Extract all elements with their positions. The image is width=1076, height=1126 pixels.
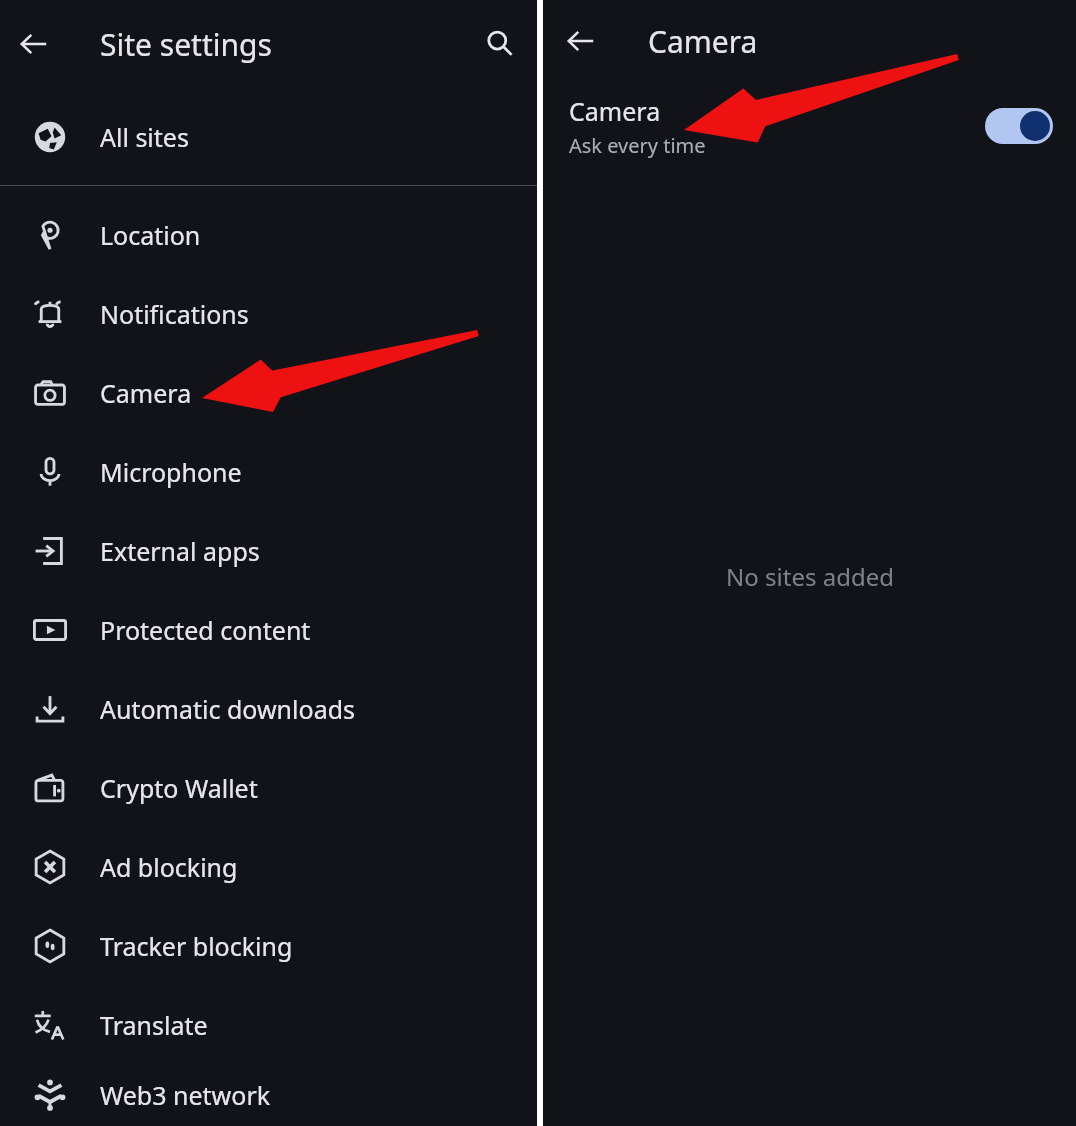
staticText: Protected content xyxy=(100,613,311,647)
button[interactable]: Tracker blocking xyxy=(0,906,537,985)
button[interactable]: Automatic downloads xyxy=(0,669,537,748)
button[interactable]: All sites xyxy=(0,88,537,185)
staticText: Microphone xyxy=(100,455,242,489)
button[interactable]: External apps xyxy=(0,511,537,590)
button[interactable]: Crypto Wallet xyxy=(0,748,537,827)
staticText: No sites added xyxy=(726,560,894,593)
staticText: External apps xyxy=(100,534,260,568)
staticText: Web3 network xyxy=(100,1078,271,1112)
staticText: Translate xyxy=(100,1008,208,1042)
button[interactable]: Protected content xyxy=(0,590,537,669)
button[interactable]: Camera permission toggle xyxy=(974,96,1064,156)
button[interactable]: Search xyxy=(463,0,537,88)
button[interactable]: Location xyxy=(0,195,537,274)
button[interactable]: Microphone xyxy=(0,432,537,511)
staticText: Ask every time xyxy=(569,132,706,159)
staticText: Camera xyxy=(569,94,661,128)
staticText: All sites xyxy=(100,120,189,154)
staticText: Crypto Wallet xyxy=(100,771,258,805)
staticText: Notifications xyxy=(100,297,249,331)
button[interactable]: Back xyxy=(0,0,68,88)
button[interactable]: Camera xyxy=(0,353,537,432)
button[interactable]: Back xyxy=(543,0,619,82)
staticText: Tracker blocking xyxy=(100,929,293,963)
staticText: Camera xyxy=(648,21,758,62)
button[interactable]: Ad blocking xyxy=(0,827,537,906)
button[interactable]: Notifications xyxy=(0,274,537,353)
staticText: Site settings xyxy=(100,24,272,65)
staticText: Camera xyxy=(100,376,192,410)
staticText: Ad blocking xyxy=(100,850,238,884)
staticText: Location xyxy=(100,218,201,252)
staticText: Automatic downloads xyxy=(100,692,356,726)
button[interactable]: Web3 network xyxy=(0,1064,537,1126)
button[interactable]: Camera xyxy=(543,82,1076,170)
button[interactable]: Translate xyxy=(0,985,537,1064)
